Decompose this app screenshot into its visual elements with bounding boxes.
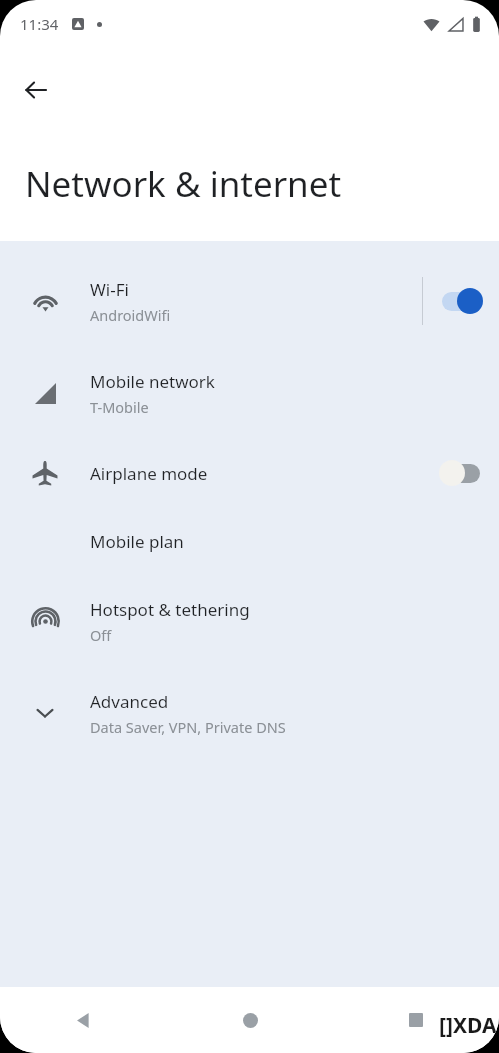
staticText: AndroidWifi bbox=[90, 305, 171, 325]
button[interactable]: Wi-Fi bbox=[0, 255, 499, 347]
staticText: Network & internet bbox=[25, 160, 342, 208]
staticText: Hotspot & tethering bbox=[90, 598, 250, 621]
button[interactable]: Back bbox=[12, 66, 60, 114]
staticText: Data Saver, VPN, Private DNS bbox=[90, 717, 286, 737]
button[interactable]: Hotspot & tethering bbox=[0, 575, 499, 667]
staticText: Advanced bbox=[90, 690, 169, 713]
staticText: 11:34 bbox=[20, 14, 59, 34]
button[interactable]: Recents bbox=[333, 987, 499, 1053]
button[interactable]: Back bbox=[0, 987, 167, 1053]
button[interactable]: Advanced bbox=[0, 667, 499, 759]
button[interactable]: Mobile plan bbox=[0, 507, 499, 575]
button[interactable]: Airplane mode bbox=[0, 439, 499, 507]
staticText: Off bbox=[90, 625, 112, 645]
staticText: Mobile plan bbox=[90, 530, 184, 553]
button[interactable]: Toggle on bbox=[423, 273, 499, 329]
button[interactable]: Home bbox=[167, 987, 333, 1053]
staticText: []XDA bbox=[439, 1011, 497, 1040]
button[interactable]: Toggle off bbox=[423, 445, 499, 501]
staticText: Mobile network bbox=[90, 370, 215, 393]
button[interactable]: Mobile network bbox=[0, 347, 499, 439]
staticText: Airplane mode bbox=[90, 462, 208, 485]
staticText: T-Mobile bbox=[90, 397, 149, 417]
staticText: Wi-Fi bbox=[90, 278, 129, 301]
